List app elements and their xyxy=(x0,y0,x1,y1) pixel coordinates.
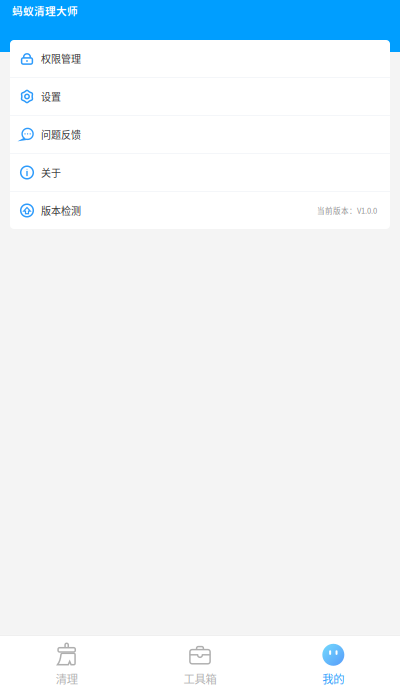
button[interactable]: 关于 xyxy=(10,154,390,191)
staticText: 工具箱 xyxy=(183,670,216,687)
staticText: 版本检测 xyxy=(41,203,81,218)
button[interactable]: 清理 xyxy=(0,636,133,693)
button[interactable]: 权限管理 xyxy=(10,40,390,77)
staticText: 清理 xyxy=(56,670,78,687)
staticText: 我的 xyxy=(322,670,344,687)
button[interactable]: 工具箱 xyxy=(133,636,267,693)
button[interactable]: 设置 xyxy=(10,78,390,115)
staticText: 设置 xyxy=(41,89,61,104)
button[interactable]: 我的 xyxy=(267,636,400,693)
staticText: 当前版本：V1.0.0 xyxy=(317,205,377,216)
staticText: 问题反馈 xyxy=(41,127,81,142)
staticText: 蚂蚁清理大师 xyxy=(12,3,78,18)
staticText: 关于 xyxy=(41,165,61,180)
staticText: 权限管理 xyxy=(41,51,81,66)
button[interactable]: 问题反馈 xyxy=(10,116,390,153)
button[interactable]: 版本检测 xyxy=(10,192,390,229)
